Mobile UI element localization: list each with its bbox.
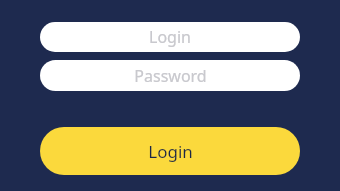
button[interactable]: Login xyxy=(40,22,300,52)
button[interactable]: Login xyxy=(40,127,300,175)
button[interactable]: Password xyxy=(40,60,300,91)
staticText: Password xyxy=(134,65,207,87)
staticText: Login xyxy=(148,140,193,163)
staticText: Login xyxy=(149,26,191,48)
